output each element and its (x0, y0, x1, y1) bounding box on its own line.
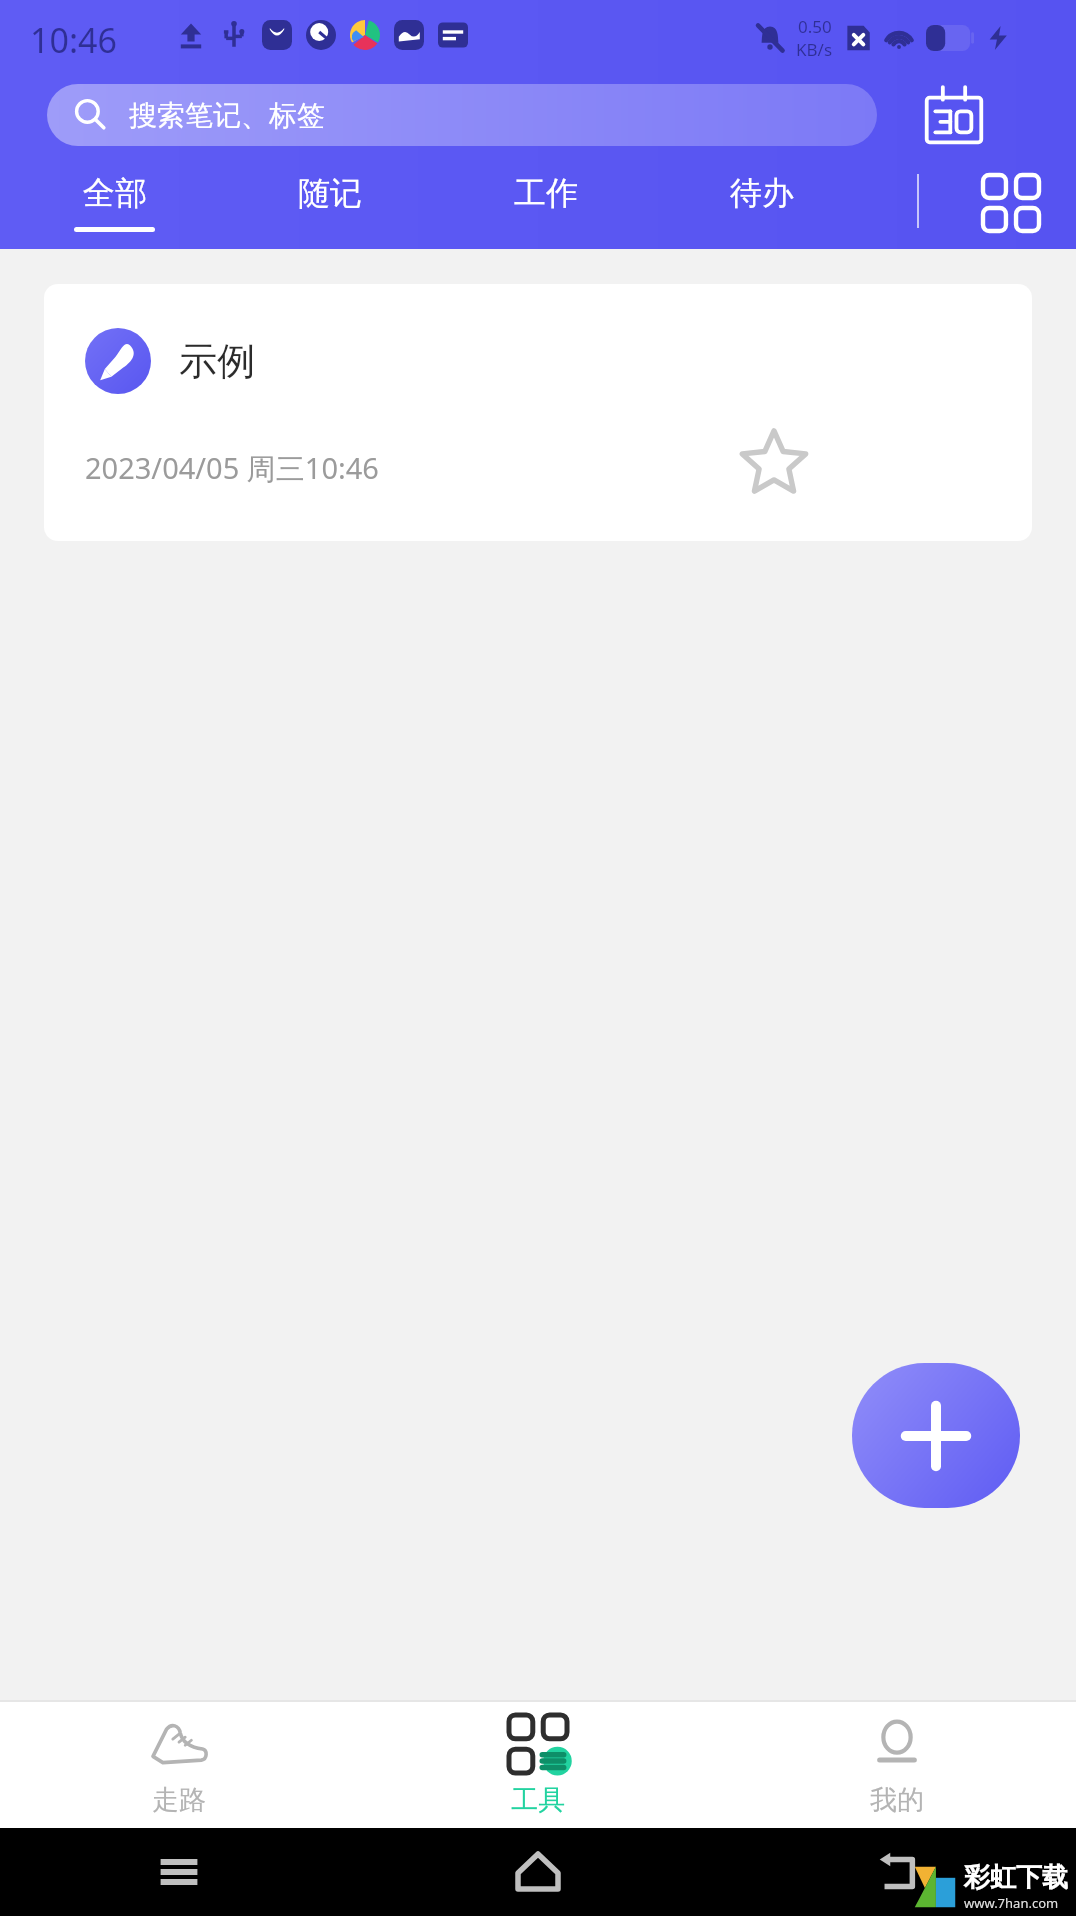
staticText: 随记 (298, 173, 362, 213)
staticText: 待办 (730, 173, 794, 213)
button[interactable]: 走路 (0, 1702, 358, 1828)
button[interactable]: 我的 (717, 1702, 1076, 1828)
staticText: 搜索笔记、标签 (129, 98, 325, 133)
button[interactable]: 工作 (466, 158, 626, 249)
button[interactable]: Add note (852, 1363, 1020, 1508)
button[interactable]: 待办 (682, 158, 842, 249)
button[interactable]: Recent apps (0, 1828, 358, 1916)
button[interactable]: Home (358, 1828, 717, 1916)
button[interactable]: 示例 (44, 284, 1032, 541)
button[interactable]: Favorite (734, 422, 814, 502)
staticText: 0.50 (798, 15, 832, 38)
staticText: 工具 (511, 1783, 565, 1817)
staticText: 我的 (870, 1783, 924, 1817)
staticText: 2023/04/05 周三10:46 (85, 448, 379, 488)
button[interactable]: 搜索笔记、标签 (47, 84, 877, 146)
staticText: 走路 (152, 1783, 206, 1817)
button[interactable]: 随记 (250, 158, 410, 249)
staticText: 工作 (514, 173, 578, 213)
staticText: 10:46 (30, 17, 117, 63)
staticText: www.7han.com (964, 1894, 1059, 1912)
button[interactable]: 全部 (34, 158, 194, 249)
button[interactable]: Grid view (974, 166, 1048, 240)
button[interactable]: Back (717, 1828, 1076, 1916)
staticText: 彩虹下载 (964, 1861, 1068, 1894)
staticText: 全部 (83, 173, 147, 213)
button[interactable]: Calendar (915, 82, 993, 148)
staticText: KB/s (796, 38, 833, 61)
staticText: 示例 (179, 337, 255, 385)
button[interactable]: 工具 (358, 1702, 717, 1828)
